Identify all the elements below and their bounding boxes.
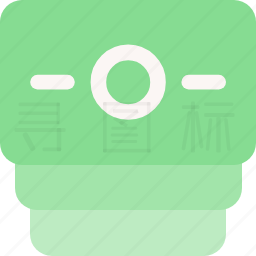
button[interactable]: Photo stack icon <box>0 0 256 256</box>
